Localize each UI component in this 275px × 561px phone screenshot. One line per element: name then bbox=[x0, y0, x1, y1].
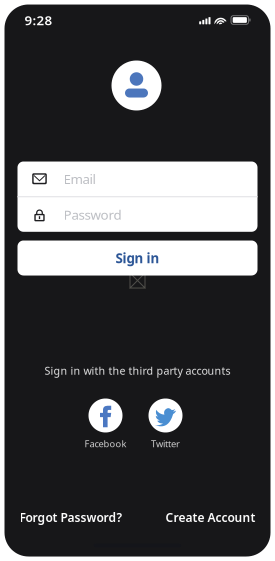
button[interactable]: Twitter bbox=[139, 398, 191, 450]
staticText: Sign in bbox=[115, 249, 159, 267]
image bbox=[129, 272, 145, 288]
staticText: Twitter bbox=[151, 437, 180, 450]
button[interactable]: Facebook bbox=[79, 398, 131, 450]
staticText: Create Account bbox=[165, 509, 255, 525]
staticText: Password bbox=[63, 206, 121, 223]
staticText: Email bbox=[63, 170, 95, 188]
staticText: Forgot Password? bbox=[19, 509, 122, 525]
staticText: 9:28 bbox=[24, 11, 52, 29]
button[interactable]: Sign in bbox=[17, 240, 257, 275]
button[interactable]: Forgot Password? bbox=[19, 509, 122, 525]
staticText: Facebook bbox=[84, 437, 126, 450]
staticText: Sign in with the third party accounts bbox=[44, 363, 230, 378]
button[interactable]: Create Account bbox=[165, 509, 255, 525]
